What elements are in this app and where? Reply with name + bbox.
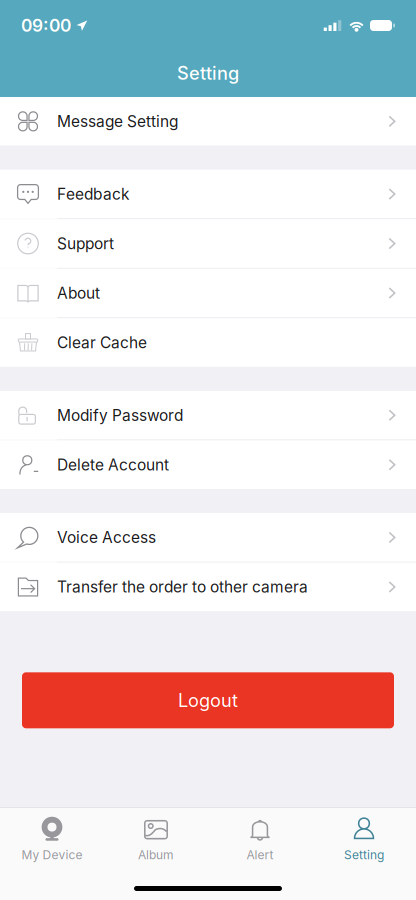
button[interactable]: Clear Cache [0,318,416,367]
staticText: Album [138,848,174,862]
staticText: My Device [21,848,82,862]
button[interactable]: My Device [0,808,104,867]
staticText: Logout [178,689,238,711]
staticText: Setting [344,848,384,862]
staticText: Voice Access [57,528,156,547]
button[interactable]: Transfer the order to other camera [0,563,416,611]
staticText: Modify Password [57,406,183,425]
staticText: Clear Cache [57,333,147,352]
button[interactable]: Message Setting [0,97,416,146]
button[interactable]: About [0,269,416,317]
staticText: About [57,284,100,302]
staticText: Alert [246,848,273,862]
button[interactable]: Support [0,219,416,268]
button[interactable]: Setting [312,808,416,867]
staticText: Setting [177,62,239,84]
staticText: Delete Account [57,455,169,474]
staticText: Support [57,234,114,253]
staticText: Message Setting [57,112,178,131]
button[interactable]: Feedback [0,170,416,218]
staticText: Transfer the order to other camera [57,578,308,596]
button[interactable]: Delete Account [0,440,416,489]
button[interactable]: Voice Access [0,513,416,562]
button[interactable]: Album [104,808,208,867]
staticText: 09:00 [21,15,71,36]
button[interactable]: Modify Password [0,391,416,440]
button[interactable]: Logout [22,672,394,728]
staticText: Feedback [57,185,129,203]
button[interactable]: Alert [208,808,312,867]
